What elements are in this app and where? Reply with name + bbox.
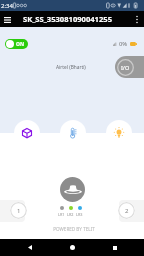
button[interactable]: Temperature xyxy=(60,120,86,146)
button[interactable]: Relay 2 xyxy=(119,200,144,222)
button[interactable]: Power I/O xyxy=(115,56,144,78)
button[interactable]: Recent apps xyxy=(107,240,122,255)
button[interactable]: Power toggle, on xyxy=(5,39,28,49)
staticText: LR2 xyxy=(67,212,74,217)
staticText: 2:34 xyxy=(1,2,13,10)
staticText: 1 xyxy=(17,207,21,215)
staticText: Airtel (Bharti) xyxy=(56,64,86,71)
button[interactable]: 1 xyxy=(10,202,27,219)
staticText: SK_SS_353081090041255 xyxy=(23,14,112,24)
button[interactable]: More options xyxy=(129,12,144,27)
staticText: ON xyxy=(16,41,25,48)
staticText: I/O xyxy=(121,64,130,71)
staticText: POWERED BY TELIT xyxy=(2,226,144,232)
button[interactable]: Home xyxy=(65,240,80,255)
staticText: 0% xyxy=(119,40,128,48)
button[interactable]: Relay 1 xyxy=(0,200,25,222)
staticText: LR1 xyxy=(58,212,65,217)
button[interactable]: Back xyxy=(22,240,37,255)
button[interactable]: Gateway status xyxy=(60,177,85,202)
staticText: LR3 xyxy=(76,212,83,217)
button[interactable]: Open navigation menu xyxy=(0,12,15,27)
button[interactable]: 2 xyxy=(118,202,135,219)
button[interactable]: Sensors xyxy=(14,120,40,146)
staticText: 2 xyxy=(125,207,129,215)
button[interactable]: Light xyxy=(106,120,132,146)
